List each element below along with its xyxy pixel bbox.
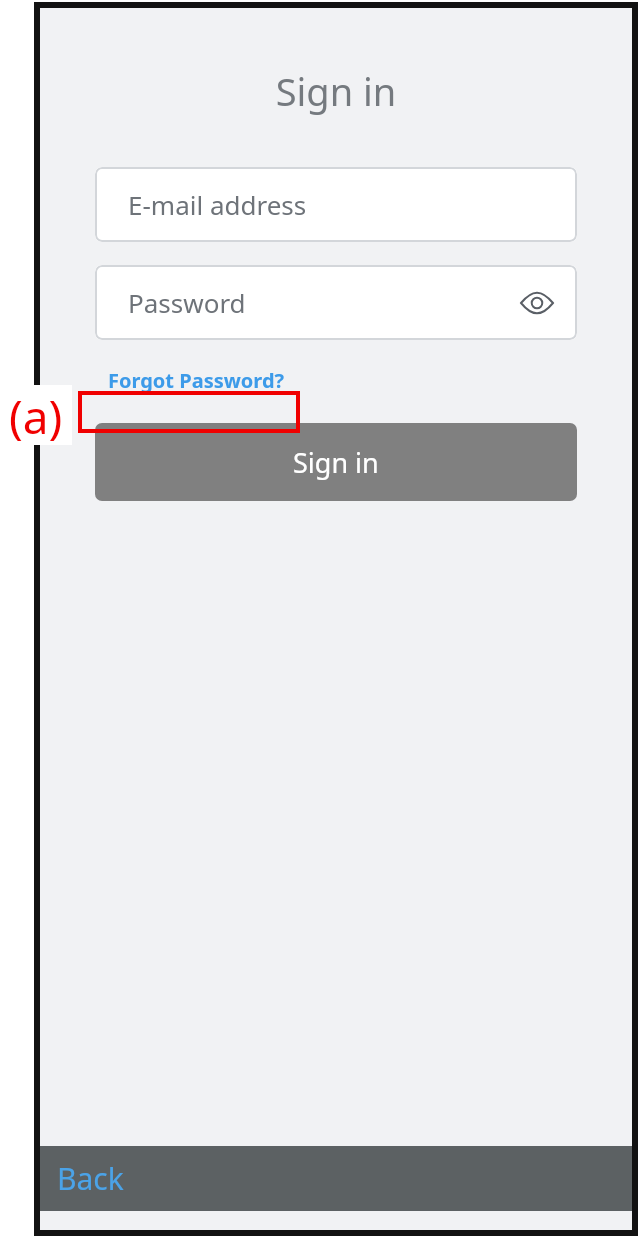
button[interactable]: Show password [515,281,559,325]
staticText: Password [128,285,246,320]
staticText: E-mail address [128,187,307,222]
staticText: (a) [9,385,63,445]
button[interactable]: Forgot Password? [95,359,298,401]
button[interactable]: E-mail address [95,167,577,242]
staticText: Forgot Password? [108,367,285,394]
button[interactable]: Back [40,1146,632,1211]
button[interactable]: Password [95,265,577,340]
staticText: Back [57,1158,124,1199]
staticText: Sign in [40,65,632,117]
staticText: Sign in [293,444,379,481]
button[interactable]: Sign in [95,423,577,501]
